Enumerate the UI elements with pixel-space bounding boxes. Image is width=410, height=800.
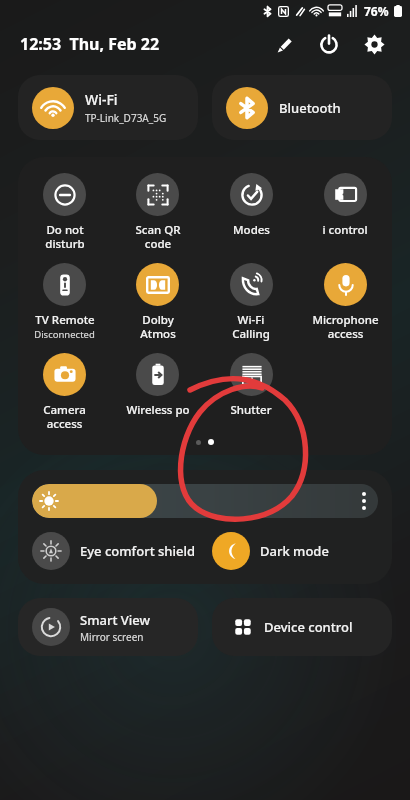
- button[interactable]: Wi-Fi: [18, 75, 198, 140]
- staticText: Scan QR code: [135, 222, 181, 251]
- staticText: Device control: [264, 618, 353, 636]
- button[interactable]: i control: [298, 171, 392, 240]
- staticText: Microphone access: [312, 312, 379, 341]
- button[interactable]: Camera access: [18, 351, 111, 433]
- button[interactable]: Wi-Fi Calling: [204, 261, 298, 343]
- button[interactable]: Microphone access: [298, 261, 392, 343]
- staticText: Wireless po: [126, 402, 190, 418]
- staticText: Dark mode: [260, 542, 329, 560]
- staticText: Eye comfort shield: [80, 542, 196, 560]
- button[interactable]: Modes: [204, 171, 298, 240]
- button[interactable]: Device control: [212, 598, 392, 656]
- staticText: Wi-Fi Calling: [232, 312, 270, 341]
- staticText: Disconnected: [34, 328, 95, 341]
- button[interactable]: Wireless po: [111, 351, 204, 420]
- staticText: Do not disturb: [45, 222, 85, 251]
- button[interactable]: Power: [309, 24, 349, 64]
- button[interactable]: Edit: [264, 24, 304, 64]
- button[interactable]: [32, 484, 378, 518]
- button[interactable]: TV Remote: [18, 261, 111, 343]
- button[interactable]: Eye comfort shield: [32, 532, 212, 570]
- staticText: Bluetooth: [279, 99, 341, 117]
- staticText: TV Remote: [35, 312, 95, 328]
- staticText: Smart View: [80, 611, 150, 629]
- staticText: i control: [322, 222, 368, 238]
- button[interactable]: Dark mode: [212, 532, 378, 570]
- staticText: 76%: [364, 3, 389, 19]
- button[interactable]: Dolby Atmos: [111, 261, 204, 343]
- staticText: Shutter: [230, 402, 272, 418]
- button[interactable]: Settings: [354, 24, 394, 64]
- staticText: Mirror screen: [80, 630, 144, 644]
- button[interactable]: Scan QR code: [111, 171, 204, 253]
- staticText: Modes: [233, 222, 270, 238]
- button[interactable]: Do not disturb: [18, 171, 111, 253]
- button[interactable]: Bluetooth: [212, 75, 392, 140]
- button[interactable]: Smart View: [18, 598, 198, 656]
- staticText: TP-Link_D73A_5G: [85, 111, 167, 125]
- staticText: 12:53 Thu, Feb 22: [20, 33, 160, 55]
- staticText: Camera access: [43, 402, 86, 431]
- staticText: Wi-Fi: [85, 90, 118, 109]
- button[interactable]: Shutter: [204, 351, 298, 420]
- staticText: Dolby Atmos: [140, 312, 176, 341]
